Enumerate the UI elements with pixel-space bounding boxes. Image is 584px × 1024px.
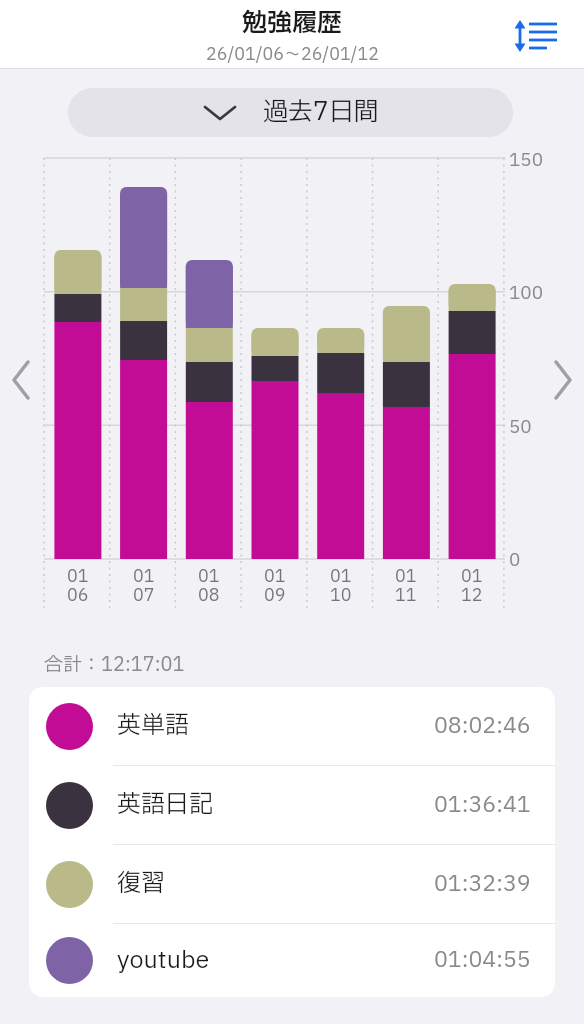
staticText: 11 [395,583,417,608]
staticText: 12 [461,583,483,608]
staticText: 勉強履歴 [242,5,343,42]
staticText: 01:04:55 [434,944,531,977]
staticText: youtube [117,943,210,979]
button[interactable]: 英語日記 [29,766,555,844]
button[interactable]: youtube [29,924,555,997]
button[interactable] [544,352,580,408]
staticText: 150 [509,147,544,174]
staticText: 0 [509,547,521,574]
button[interactable] [510,14,562,58]
button[interactable] [4,352,40,408]
staticText: 50 [509,414,532,441]
staticText: 08 [198,583,220,608]
staticText: 06 [67,583,89,608]
staticText: 01 [198,564,220,589]
staticText: 英語日記 [117,787,213,823]
staticText: 08:02:46 [434,710,531,743]
staticText: 26/01/06～26/01/12 [206,42,379,67]
button[interactable]: 過去7日間 [68,88,513,137]
staticText: 01 [133,564,155,589]
staticText: 01 [395,564,417,589]
button[interactable]: 英単語 [29,687,555,765]
staticText: 100 [509,280,544,307]
staticText: 09 [264,583,286,608]
staticText: 01:36:41 [434,789,531,822]
button[interactable]: 復習 [29,845,555,923]
staticText: 01 [67,564,89,589]
staticText: 07 [133,583,155,608]
staticText: 10 [330,583,352,608]
staticText: 01 [330,564,352,589]
staticText: 01 [461,564,483,589]
staticText: 過去7日間 [263,94,379,131]
staticText: 復習 [117,866,165,902]
staticText: 01:32:39 [434,868,531,901]
staticText: 合計：12:17:01 [44,651,185,679]
staticText: 01 [264,564,286,589]
staticText: 英単語 [117,708,189,744]
